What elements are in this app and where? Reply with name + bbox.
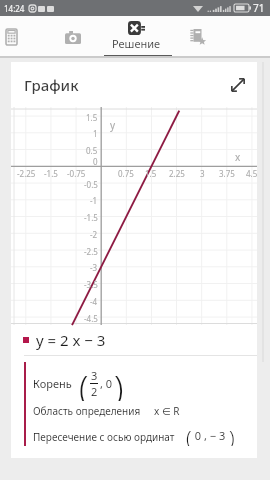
staticText: 3.75 <box>219 168 235 179</box>
staticText: График <box>24 75 79 95</box>
staticText: -0.75 <box>67 168 86 179</box>
staticText: ( <box>79 365 89 401</box>
staticText: -0.5 <box>84 179 98 190</box>
staticText: Корень <box>33 376 72 391</box>
staticText: -3.5 <box>84 279 98 290</box>
staticText: 0 , − 3 <box>192 428 229 443</box>
staticText: -2.25 <box>17 168 36 179</box>
staticText: 3 <box>91 368 98 383</box>
button[interactable]: Решение <box>104 16 168 58</box>
staticText: y = 2 x − 3 <box>36 330 106 350</box>
staticText: 2.25 <box>169 168 185 179</box>
staticText: 3 <box>200 168 205 179</box>
button[interactable]: Notebook <box>167 16 229 58</box>
staticText: -4.5 <box>84 313 98 324</box>
staticText: -2.5 <box>84 246 98 257</box>
button[interactable]: Camera <box>42 16 104 58</box>
staticText: x <box>235 150 241 164</box>
staticText: -2 <box>90 229 98 240</box>
staticText: , 0 <box>100 376 113 391</box>
staticText: y <box>110 118 116 132</box>
staticText: -1 <box>90 195 98 206</box>
staticText: x ∈ R <box>154 404 180 418</box>
staticText: 14:24 <box>4 3 25 14</box>
staticText: 0.75 <box>118 168 134 179</box>
staticText: 2 <box>91 384 98 399</box>
staticText: -1.5 <box>44 168 58 179</box>
staticText: ) <box>229 424 235 446</box>
staticText: 0 <box>93 156 98 167</box>
staticText: 1.5 <box>86 112 98 123</box>
button[interactable]: Expand <box>227 74 249 96</box>
staticText: Пересечение с осью ординат <box>33 430 175 444</box>
staticText: 1.5 <box>145 168 157 179</box>
staticText: -4 <box>90 296 98 307</box>
staticText: ) <box>114 365 124 401</box>
staticText: Область определения <box>33 404 141 418</box>
staticText: 4.5 <box>246 168 258 179</box>
button[interactable]: Calculator <box>0 16 42 58</box>
staticText: -1.5 <box>84 212 98 223</box>
staticText: 0.5 <box>86 145 98 156</box>
staticText: ( <box>186 424 192 446</box>
staticText: 1 <box>93 128 98 139</box>
staticText: Решение <box>112 36 161 51</box>
staticText: 71 <box>253 1 265 15</box>
staticText: -3 <box>90 262 98 273</box>
